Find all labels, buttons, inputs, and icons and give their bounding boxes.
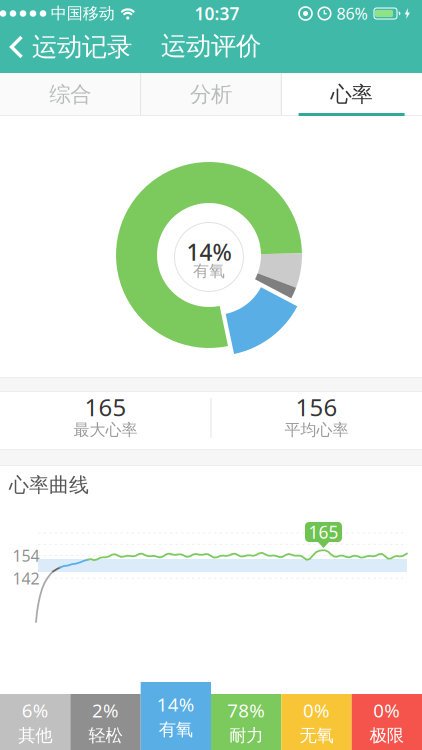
staticText: 有氧 bbox=[159, 719, 193, 740]
button[interactable]: 14% bbox=[141, 682, 211, 750]
button[interactable]: 0% bbox=[281, 694, 352, 750]
button[interactable]: 6% bbox=[0, 694, 70, 750]
staticText: 86% bbox=[336, 3, 367, 24]
staticText: 最大心率 bbox=[73, 420, 137, 440]
button[interactable]: 综合 bbox=[0, 73, 141, 116]
staticText: 165 bbox=[308, 520, 338, 543]
staticText: 156 bbox=[295, 391, 337, 423]
button[interactable]: 0% bbox=[352, 694, 422, 750]
button[interactable]: 运动记录 bbox=[8, 25, 168, 69]
staticText: 其他 bbox=[18, 725, 52, 746]
staticText: 运动评价 bbox=[161, 30, 261, 61]
staticText: 耐力 bbox=[229, 725, 263, 746]
staticText: 平均心率 bbox=[284, 420, 348, 440]
button[interactable]: 2% bbox=[70, 694, 141, 750]
button[interactable]: 心率 bbox=[281, 73, 422, 116]
staticText: 154 bbox=[12, 545, 39, 566]
staticText: 轻松 bbox=[88, 725, 122, 746]
staticText: 0% bbox=[373, 698, 400, 723]
staticText: 78% bbox=[227, 698, 265, 723]
staticText: 心率曲线 bbox=[9, 473, 89, 497]
staticText: 心率 bbox=[331, 81, 373, 108]
staticText: 142 bbox=[12, 568, 39, 589]
staticText: 综合 bbox=[49, 81, 91, 108]
staticText: 有氧 bbox=[193, 261, 225, 281]
staticText: 165 bbox=[84, 391, 126, 423]
staticText: 极限 bbox=[370, 725, 404, 746]
staticText: 0% bbox=[303, 698, 330, 723]
staticText: 2% bbox=[92, 698, 119, 723]
staticText: 6% bbox=[22, 698, 49, 723]
staticText: 14% bbox=[186, 237, 231, 267]
staticText: 运动记录 bbox=[32, 31, 132, 62]
button[interactable]: 分析 bbox=[141, 73, 281, 116]
staticText: 14% bbox=[157, 692, 195, 717]
staticText: 中国移动 bbox=[51, 4, 115, 23]
staticText: 分析 bbox=[190, 81, 232, 108]
staticText: 无氧 bbox=[299, 725, 333, 746]
button[interactable]: 78% bbox=[211, 694, 281, 750]
staticText: 10:37 bbox=[194, 2, 239, 25]
